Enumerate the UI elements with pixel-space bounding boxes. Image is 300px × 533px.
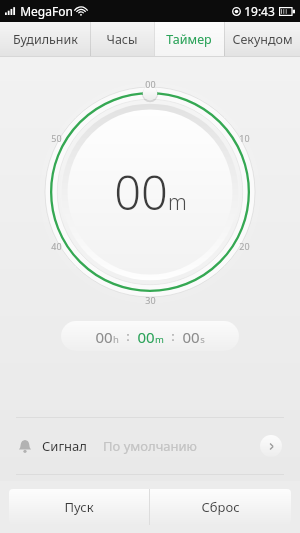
button[interactable]: Пуск <box>9 489 149 525</box>
staticText: 00 <box>145 78 156 90</box>
button[interactable]: Будильник <box>0 22 90 56</box>
staticText: : <box>126 327 130 345</box>
staticText: 30 <box>145 294 156 306</box>
staticText: 40 <box>51 240 62 252</box>
staticText: По умолчанию <box>103 437 197 455</box>
staticText: : <box>171 327 175 345</box>
staticText: 00 <box>95 327 113 347</box>
staticText: MegaFon <box>20 3 73 19</box>
staticText: 10 <box>239 132 250 144</box>
button[interactable]: Выбрать сигнал <box>260 435 282 457</box>
staticText: 20 <box>239 240 250 252</box>
staticText: s <box>200 333 205 346</box>
staticText: m <box>155 333 164 346</box>
button[interactable]: 00 <box>61 321 239 351</box>
staticText: Пуск <box>64 498 94 516</box>
button[interactable]: Сброс <box>150 489 291 525</box>
staticText: Сброс <box>201 498 240 516</box>
staticText: Будильник <box>13 31 78 48</box>
staticText: Часы <box>106 31 138 48</box>
staticText: 00 <box>182 327 200 347</box>
staticText: 00 <box>137 327 155 347</box>
button[interactable]: Таймер <box>154 22 224 56</box>
button[interactable]: Сигнал <box>0 418 300 474</box>
staticText: Секундом <box>232 31 293 48</box>
staticText: 00 <box>114 160 168 224</box>
staticText: Сигнал <box>42 437 87 455</box>
button[interactable]: Секундом <box>224 22 300 56</box>
staticText: 19:43 <box>244 3 275 19</box>
staticText: h <box>113 333 119 346</box>
button[interactable]: Часы <box>90 22 154 56</box>
staticText: Таймер <box>166 31 212 48</box>
staticText: 50 <box>51 132 62 144</box>
staticText: m <box>168 188 187 217</box>
